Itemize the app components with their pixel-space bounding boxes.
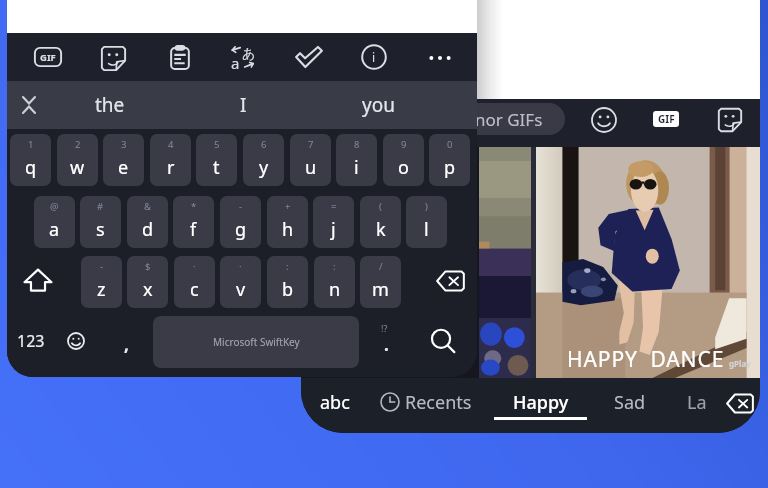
- staticText: gPlay: [729, 358, 751, 369]
- staticText: q: [25, 155, 37, 180]
- button[interactable]: Clipboard: [167, 45, 193, 71]
- button[interactable]: (: [360, 196, 401, 248]
- staticText: #: [97, 200, 104, 213]
- button[interactable]: ·: [220, 256, 261, 308]
- button[interactable]: the: [65, 81, 155, 129]
- button[interactable]: 9: [383, 134, 424, 186]
- staticText: a: [49, 217, 60, 242]
- button[interactable]: ): [406, 196, 447, 248]
- staticText: 4: [168, 138, 174, 151]
- button[interactable]: Recents: [379, 378, 491, 426]
- button[interactable]: /: [360, 256, 401, 308]
- staticText: f: [190, 217, 197, 242]
- staticText: +: [285, 200, 291, 213]
- button[interactable]: Search: [424, 324, 461, 362]
- staticText: ·: [193, 260, 196, 273]
- staticText: 0: [447, 138, 453, 151]
- button[interactable]: @: [34, 196, 75, 248]
- staticText: l: [424, 217, 429, 242]
- button[interactable]: 1: [10, 134, 51, 186]
- staticText: k: [376, 217, 386, 242]
- staticText: i: [354, 155, 359, 180]
- button[interactable]: .: [368, 320, 404, 362]
- staticText: nor GIFs: [475, 108, 543, 131]
- button[interactable]: Emoji: [67, 332, 85, 350]
- button[interactable]: nor GIFs: [431, 103, 565, 135]
- button[interactable]: Microsoft SwiftKey: [153, 316, 359, 368]
- staticText: Sad: [614, 390, 646, 415]
- button[interactable]: More options: [428, 53, 452, 63]
- button[interactable]: Sad: [599, 378, 661, 426]
- staticText: r: [167, 155, 175, 180]
- button[interactable]: 4: [150, 134, 191, 186]
- button[interactable]: :: [314, 256, 355, 308]
- button[interactable]: Emoji: [591, 107, 617, 133]
- button[interactable]: Backspace: [436, 270, 465, 292]
- button[interactable]: 3: [103, 134, 144, 186]
- button[interactable]: Collapse suggestions: [13, 89, 45, 121]
- button[interactable]: 123: [8, 318, 54, 364]
- button[interactable]: Stickers: [715, 103, 745, 137]
- staticText: j: [331, 217, 336, 242]
- button[interactable]: +: [267, 196, 308, 248]
- button[interactable]: :: [267, 256, 308, 308]
- button[interactable]: La: [687, 378, 727, 426]
- button[interactable]: ,: [108, 320, 144, 362]
- button[interactable]: 2: [57, 134, 98, 186]
- button[interactable]: [479, 147, 531, 378]
- button[interactable]: -: [81, 256, 122, 308]
- staticText: b: [282, 277, 294, 302]
- button[interactable]: $: [127, 256, 168, 308]
- button[interactable]: Info: [361, 44, 387, 70]
- button[interactable]: -: [220, 196, 261, 248]
- staticText: g: [235, 217, 247, 242]
- staticText: t: [213, 155, 220, 180]
- button[interactable]: ·: [174, 256, 215, 308]
- button[interactable]: 8: [336, 134, 377, 186]
- staticText: I: [240, 92, 247, 118]
- button[interactable]: 0: [429, 134, 470, 186]
- staticText: x: [143, 277, 153, 302]
- button[interactable]: Emoji: [589, 103, 619, 137]
- staticText: 6: [261, 138, 267, 151]
- button[interactable]: Backspace: [726, 393, 754, 414]
- staticText: @: [50, 200, 59, 213]
- staticText: :: [333, 260, 336, 273]
- staticText: GIF: [658, 112, 675, 126]
- button[interactable]: Shift: [19, 260, 57, 300]
- staticText: Happy: [513, 390, 569, 415]
- staticText: c: [190, 277, 199, 302]
- button[interactable]: =: [313, 196, 354, 248]
- staticText: HAPPY DANCE: [567, 345, 725, 374]
- button[interactable]: 6: [243, 134, 284, 186]
- button[interactable]: Check: [295, 45, 323, 69]
- button[interactable]: Recents: [380, 392, 400, 412]
- button[interactable]: HAPPY DANCE: [536, 147, 760, 378]
- button[interactable]: 5: [196, 134, 237, 186]
- button[interactable]: 7: [290, 134, 331, 186]
- button[interactable]: GIF: [34, 47, 62, 67]
- button[interactable]: I: [198, 81, 288, 129]
- staticText: ·: [239, 260, 242, 273]
- button[interactable]: GIF: [653, 111, 679, 127]
- button[interactable]: Stickers: [100, 45, 127, 72]
- staticText: &: [144, 200, 151, 213]
- button[interactable]: &: [127, 196, 168, 248]
- staticText: u: [305, 155, 317, 180]
- button[interactable]: Translate: [229, 44, 257, 72]
- button[interactable]: #: [80, 196, 121, 248]
- staticText: La: [687, 390, 707, 415]
- button[interactable]: Happy: [501, 378, 581, 426]
- staticText: 9: [401, 138, 407, 151]
- button[interactable]: abc: [305, 378, 365, 426]
- staticText: 8: [354, 138, 360, 151]
- button[interactable]: Emoji: [57, 318, 95, 364]
- button[interactable]: you: [333, 81, 423, 129]
- staticText: a: [231, 53, 240, 73]
- staticText: z: [97, 277, 106, 302]
- button[interactable]: Stickers: [717, 107, 743, 133]
- button[interactable]: Search: [424, 322, 461, 364]
- staticText: i: [372, 49, 376, 65]
- button[interactable]: *: [173, 196, 214, 248]
- staticText: n: [329, 277, 341, 302]
